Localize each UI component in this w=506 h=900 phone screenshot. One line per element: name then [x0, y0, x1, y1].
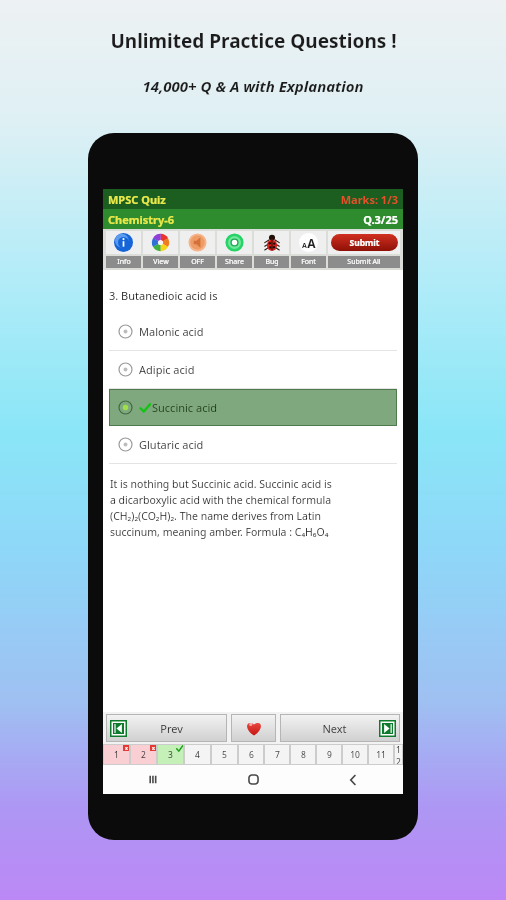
staticText: OFF: [191, 257, 204, 267]
staticText: 4: [195, 749, 200, 761]
button[interactable]: 2: [130, 744, 157, 765]
button[interactable]: Sound off: [180, 231, 215, 254]
button[interactable]: 5: [211, 744, 238, 765]
staticText: 10: [350, 749, 360, 761]
staticText: Submit: [349, 237, 380, 249]
staticText: 7: [275, 749, 280, 761]
button[interactable]: 12: [394, 744, 403, 765]
button[interactable]: Submit All: [328, 256, 400, 268]
staticText: It is nothing but Succinic acid. Succini…: [110, 477, 396, 491]
staticText: Glutaric acid: [139, 437, 204, 452]
staticText: Q.3/25: [363, 212, 398, 227]
staticText: 1: [114, 749, 119, 761]
button[interactable]: Glutaric acid: [109, 426, 397, 463]
staticText: Share: [225, 257, 244, 267]
button[interactable]: Font: [291, 256, 326, 268]
staticText: 14,000+ Q & A with Explanation: [142, 76, 364, 96]
staticText: a dicarboxylic acid with the chemical fo…: [110, 493, 396, 507]
staticText: MPSC Quiz: [108, 192, 166, 207]
staticText: Adipic acid: [139, 362, 195, 377]
staticText: Marks: 1/3: [340, 192, 398, 207]
button[interactable]: 7: [264, 744, 290, 765]
staticText: (CH₂)₂(CO₂H)₂. The name derives from Lat…: [110, 509, 396, 523]
staticText: 8: [301, 749, 306, 761]
staticText: Malonic acid: [139, 324, 204, 339]
staticText: Succinic acid: [152, 400, 218, 415]
button[interactable]: Back: [303, 765, 403, 794]
staticText: 3. Butanedioic acid is: [109, 288, 218, 303]
staticText: View: [153, 257, 169, 267]
button[interactable]: 6: [238, 744, 264, 765]
button[interactable]: Info: [106, 256, 141, 268]
button[interactable]: Bug: [254, 256, 289, 268]
staticText: 11: [376, 749, 386, 761]
button[interactable]: Submit: [328, 231, 400, 254]
staticText: 12: [394, 744, 403, 765]
button[interactable]: Malonic acid: [109, 313, 397, 350]
staticText: 6: [249, 749, 254, 761]
button[interactable]: Next: [280, 714, 400, 742]
staticText: 5: [222, 749, 227, 761]
button[interactable]: Share: [217, 231, 252, 254]
button[interactable]: 1: [103, 744, 130, 765]
button[interactable]: Bug: [254, 231, 289, 254]
staticText: 9: [327, 749, 332, 761]
staticText: 3: [168, 749, 173, 761]
button[interactable]: View: [143, 256, 178, 268]
staticText: Unlimited Practice Questions !: [110, 28, 397, 54]
staticText: Next: [322, 721, 347, 736]
staticText: Chemistry-6: [108, 212, 175, 227]
button[interactable]: Info: [106, 231, 141, 254]
staticText: Prev: [160, 721, 183, 736]
button[interactable]: OFF: [180, 256, 215, 268]
staticText: 2: [141, 749, 146, 761]
button[interactable]: 4: [184, 744, 211, 765]
staticText: A: [307, 235, 316, 251]
button[interactable]: 11: [368, 744, 394, 765]
staticText: x: [152, 745, 155, 751]
button[interactable]: Share: [217, 256, 252, 268]
button[interactable]: Succinic acid: [109, 389, 397, 426]
button[interactable]: Favourite: [231, 714, 276, 742]
button[interactable]: 8: [290, 744, 316, 765]
staticText: x: [125, 745, 128, 751]
button[interactable]: 9: [316, 744, 342, 765]
staticText: Font: [301, 257, 316, 267]
button[interactable]: Recents: [103, 765, 203, 794]
button[interactable]: 3: [157, 744, 184, 765]
button[interactable]: Prev: [106, 714, 227, 742]
button[interactable]: Home: [203, 765, 303, 794]
staticText: Info: [117, 257, 131, 267]
staticText: succinum, meaning amber. Formula : C₄H₆O…: [110, 525, 396, 539]
button[interactable]: Adipic acid: [109, 351, 397, 388]
staticText: Bug: [265, 257, 279, 267]
button[interactable]: View: [143, 231, 178, 254]
staticText: Submit All: [347, 257, 381, 267]
button[interactable]: 10: [342, 744, 368, 765]
button[interactable]: Font: [291, 231, 326, 254]
staticText: A: [302, 241, 307, 251]
